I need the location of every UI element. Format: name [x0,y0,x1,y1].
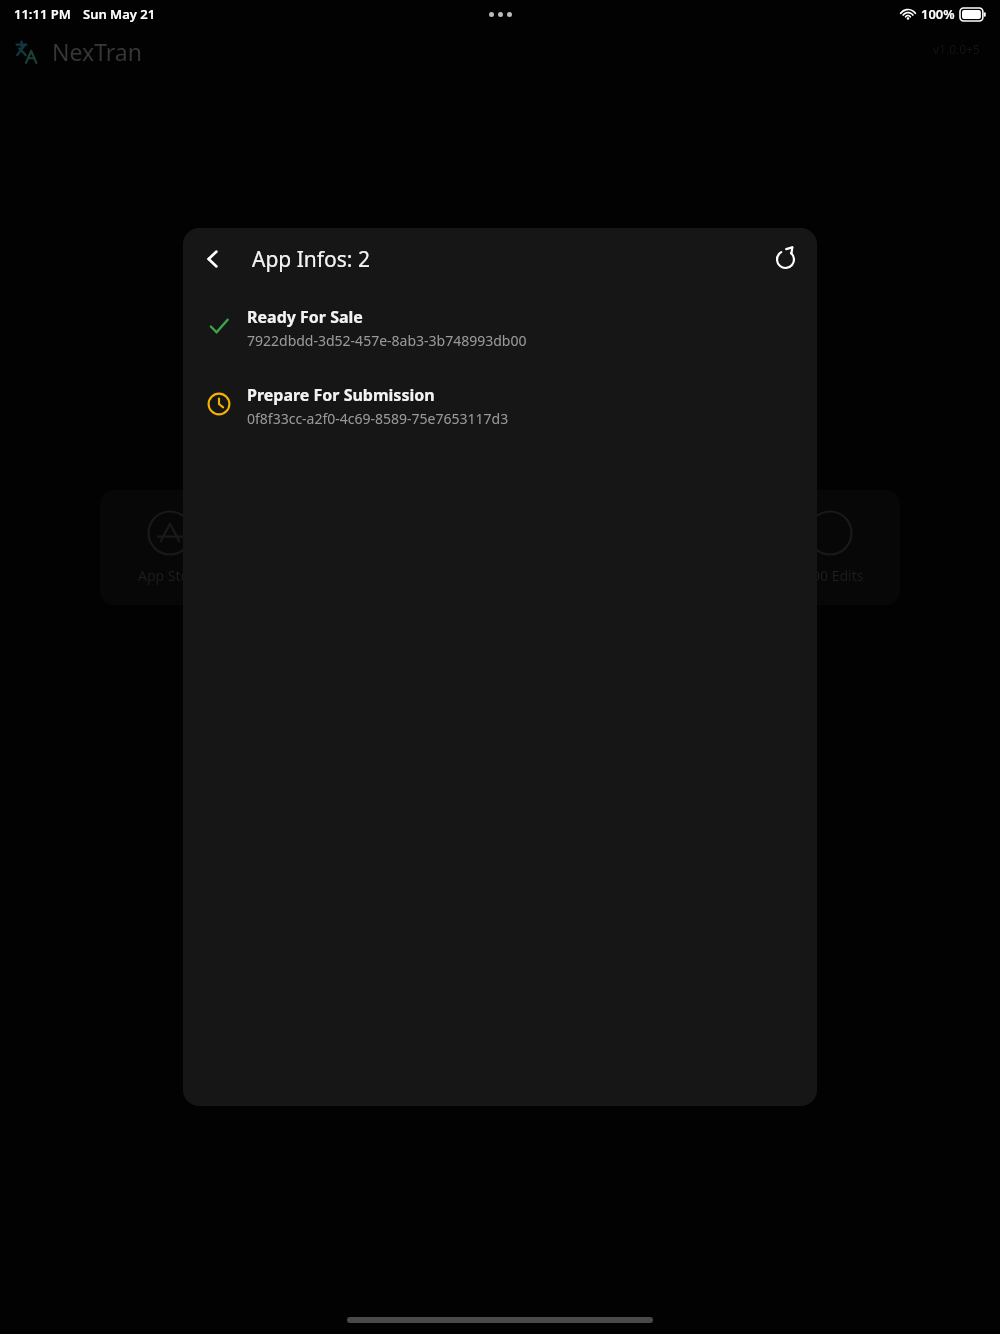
button[interactable]: App Store [100,490,240,605]
staticText: 7922dbdd-3d52-457e-8ab3-3b748993db00 [247,331,527,350]
button[interactable]: Refresh [763,237,807,281]
button[interactable]: Prepare For Submission [183,376,817,434]
staticText: App Store [138,566,203,585]
staticText: 11:11 PM [14,5,71,23]
staticText: Prepare For Submission [247,384,435,406]
staticText: 100% [921,5,955,23]
staticText: App Infos: 2 [252,245,370,274]
staticText: v1.0.0+5 [933,41,980,57]
staticText: 1200 Edits [796,566,864,585]
button[interactable]: Ready For Sale [183,298,817,356]
staticText: NexTran [52,36,142,67]
button[interactable]: 1200 Edits [760,490,900,605]
button[interactable]: Back [191,237,235,281]
staticText: 0f8f33cc-a2f0-4c69-8589-75e7653117d3 [247,409,509,428]
staticText: Ready For Sale [247,306,363,328]
staticText: Sun May 21 [83,5,156,23]
